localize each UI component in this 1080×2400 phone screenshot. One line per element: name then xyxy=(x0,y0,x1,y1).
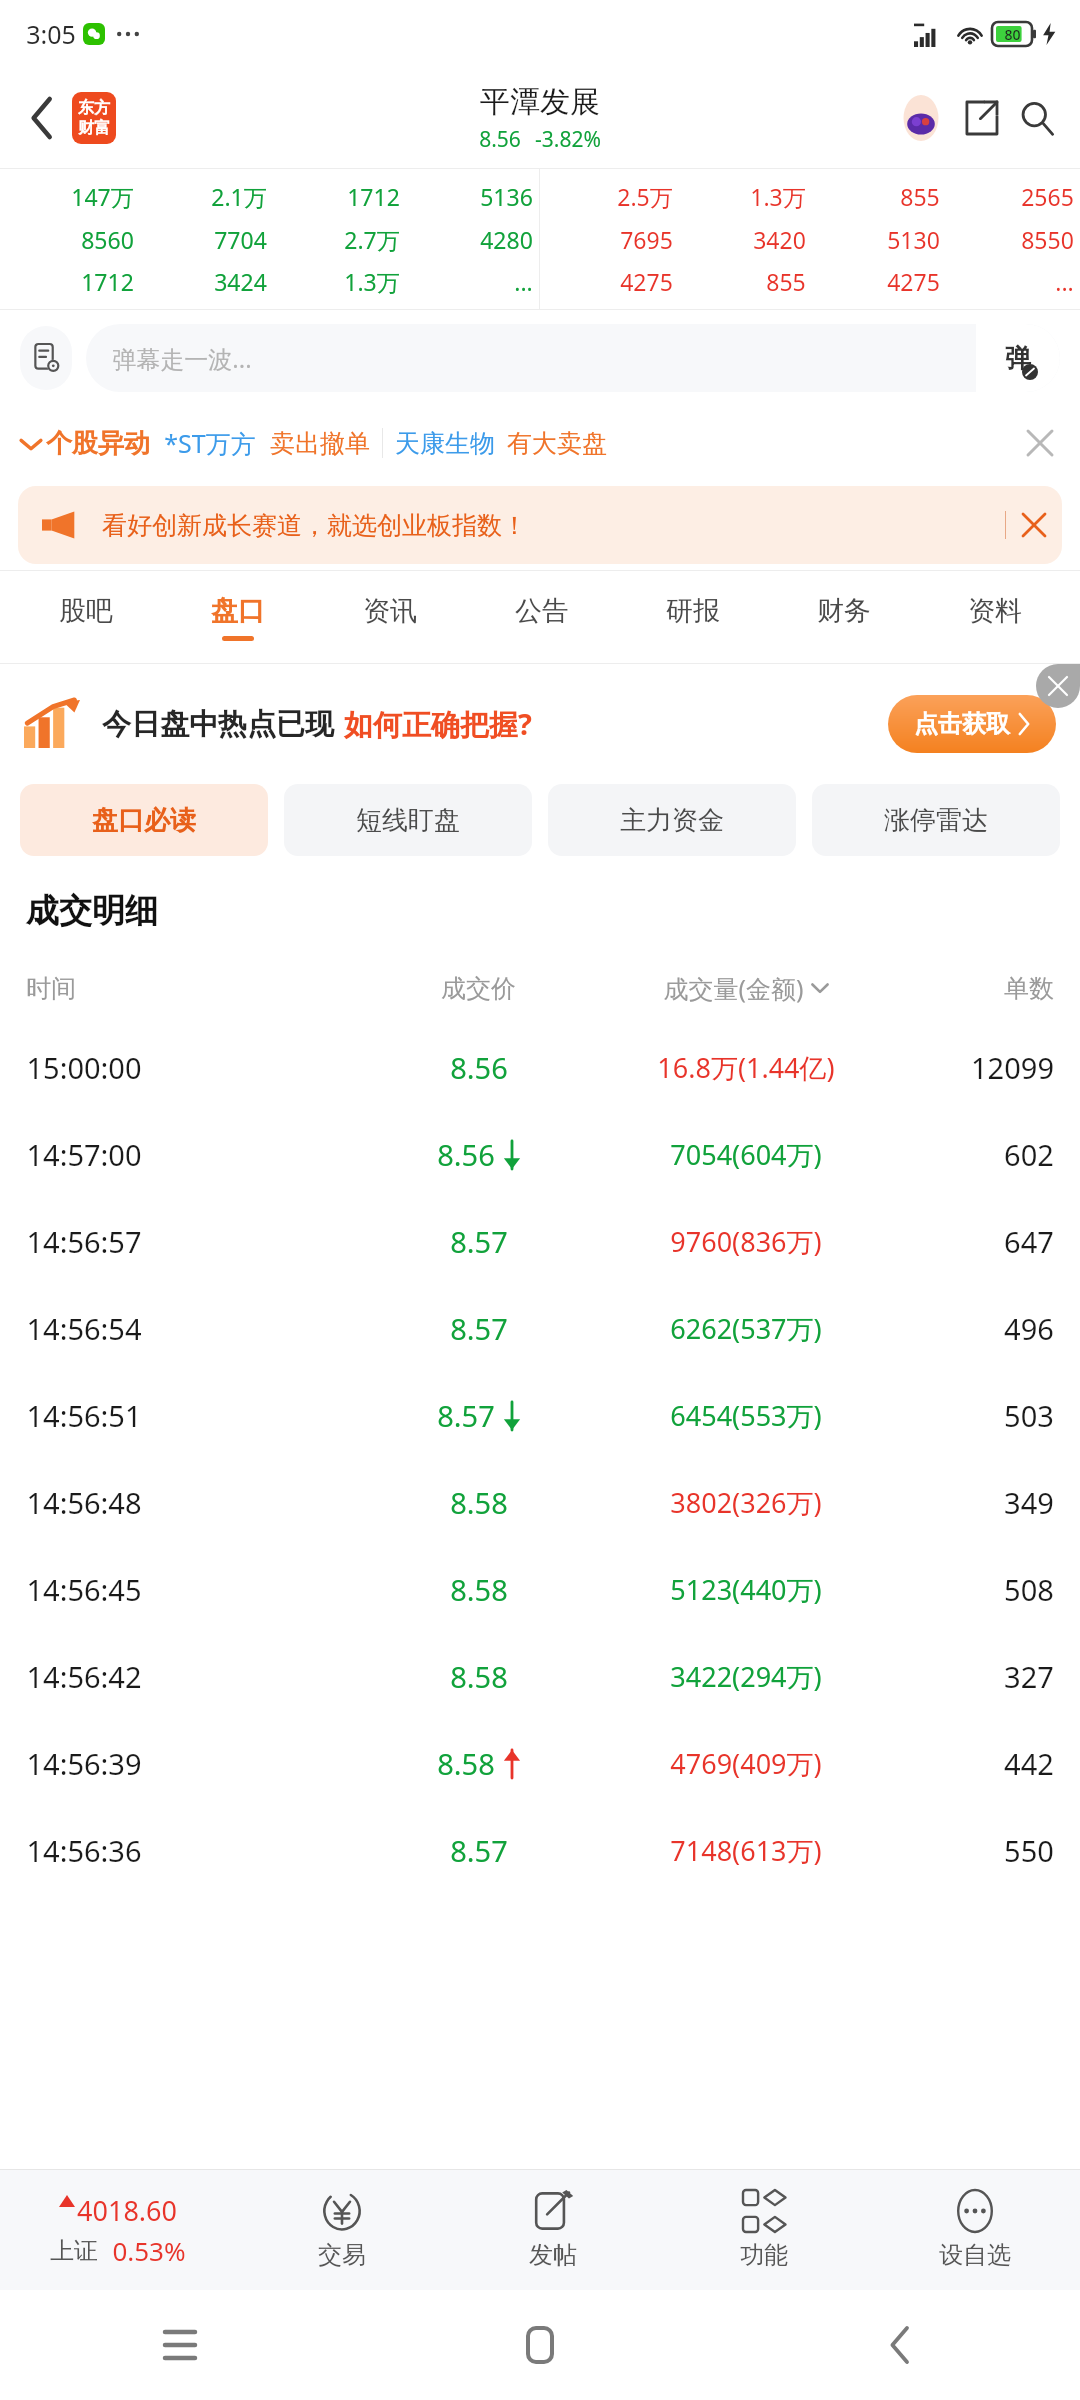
staticText: 财务 xyxy=(817,594,871,628)
button[interactable]: Share xyxy=(954,91,1008,145)
button[interactable]: 14:56:57 xyxy=(0,1198,1080,1285)
staticText: 14:56:36 xyxy=(26,1831,142,1870)
button[interactable]: 14:57:00 xyxy=(0,1111,1080,1198)
staticText: 成交价 xyxy=(441,973,516,1004)
staticText: 财富 xyxy=(78,118,110,138)
button[interactable]: 卖出撤单 xyxy=(270,428,370,459)
staticText: 研报 xyxy=(666,594,720,628)
button[interactable]: 14:56:48 xyxy=(0,1459,1080,1546)
staticText: 8.56 xyxy=(479,125,521,154)
button[interactable]: 发帖 xyxy=(447,2170,658,2290)
staticText: 弹 xyxy=(1005,342,1031,375)
staticText: 3420 xyxy=(753,224,806,255)
button[interactable]: Close ad xyxy=(1036,664,1080,708)
staticText: 14:56:39 xyxy=(26,1744,142,1783)
button[interactable]: 成交量(金额) xyxy=(602,971,890,1005)
staticText: 成交明细 xyxy=(26,890,158,932)
button[interactable]: Back xyxy=(14,90,70,146)
staticText: 4280 xyxy=(480,224,533,255)
button[interactable]: Toggle danmaku xyxy=(976,324,1060,392)
button[interactable]: Close banner xyxy=(1006,497,1062,553)
staticText: 5123(440万) xyxy=(670,1571,822,1608)
staticText: 7704 xyxy=(214,224,267,255)
button[interactable]: Home xyxy=(504,2309,576,2381)
button[interactable]: 看好创新成长赛道，就选创业板指数！ xyxy=(18,486,1062,564)
staticText: 855 xyxy=(766,266,806,297)
staticText: 资料 xyxy=(968,594,1022,628)
staticText: 4275 xyxy=(620,266,673,297)
button[interactable]: 弹幕走一波... xyxy=(86,324,1060,392)
button[interactable]: 功能 xyxy=(658,2170,869,2290)
staticText: 327 xyxy=(1004,1657,1054,1696)
staticText: 6262(537万) xyxy=(670,1310,822,1347)
staticText: 4769(409万) xyxy=(670,1745,822,1782)
staticText: 550 xyxy=(1004,1831,1054,1870)
button[interactable]: East Money xyxy=(72,92,116,144)
staticText: 功能 xyxy=(740,2240,788,2270)
button[interactable]: 有大卖盘 xyxy=(507,428,607,459)
button[interactable]: Back xyxy=(864,2309,936,2381)
staticText: 3424 xyxy=(214,266,267,297)
staticText: 14:56:42 xyxy=(26,1657,142,1696)
button[interactable]: 4018.60 xyxy=(0,2170,236,2290)
button[interactable]: Danmaku settings xyxy=(20,326,72,390)
button[interactable]: 14:56:54 xyxy=(0,1285,1080,1372)
button[interactable]: 资料 xyxy=(919,571,1070,663)
button[interactable]: 个股异动 xyxy=(18,427,150,460)
button[interactable]: Recents xyxy=(144,2309,216,2381)
button[interactable]: 公告 xyxy=(466,571,617,663)
staticText: 2.7万 xyxy=(344,224,400,255)
staticText: 2565 xyxy=(1021,181,1074,212)
staticText: 7148(613万) xyxy=(670,1832,822,1869)
button[interactable]: 14:56:45 xyxy=(0,1546,1080,1633)
staticText: 349 xyxy=(1004,1483,1054,1522)
staticText: ... xyxy=(1055,266,1074,297)
button[interactable]: 股吧 xyxy=(10,571,162,663)
staticText: 14:56:54 xyxy=(26,1309,142,1348)
button[interactable]: 研报 xyxy=(617,571,768,663)
button[interactable]: 设自选 xyxy=(869,2170,1080,2290)
staticText: 496 xyxy=(1004,1309,1054,1348)
staticText: 上证 xyxy=(50,2236,98,2266)
staticText: 4018.60 xyxy=(77,2192,177,2229)
staticText: 8550 xyxy=(1021,224,1074,255)
button[interactable]: 财务 xyxy=(768,571,919,663)
staticText: 短线盯盘 xyxy=(356,804,460,837)
staticText: 资讯 xyxy=(363,594,417,628)
button[interactable]: 14:56:51 xyxy=(0,1372,1080,1459)
staticText: 8.58 xyxy=(450,1570,508,1609)
button[interactable]: 14:56:36 xyxy=(0,1807,1080,1894)
staticText: 2.1万 xyxy=(211,181,267,212)
button[interactable]: 14:56:39 xyxy=(0,1720,1080,1807)
staticText: ... xyxy=(514,266,533,297)
button[interactable]: 资讯 xyxy=(314,571,466,663)
button[interactable]: 盘口必读 xyxy=(20,784,268,856)
staticText: 8.57 xyxy=(437,1396,495,1435)
button[interactable]: Search xyxy=(1010,91,1064,145)
button[interactable]: 短线盯盘 xyxy=(284,784,532,856)
button[interactable]: 盘口 xyxy=(162,571,314,663)
button[interactable]: 点击获取 xyxy=(888,695,1056,753)
staticText: 8.57 xyxy=(450,1831,508,1870)
staticText: 8.57 xyxy=(450,1309,508,1348)
button[interactable]: *ST万方 xyxy=(164,426,256,460)
staticText: 602 xyxy=(1004,1135,1054,1174)
staticText: 1712 xyxy=(81,266,134,297)
button[interactable]: 15:00:00 xyxy=(0,1024,1080,1111)
staticText: 东方 xyxy=(78,98,110,118)
staticText: 647 xyxy=(1004,1222,1054,1261)
button[interactable]: 天康生物 xyxy=(395,428,495,459)
staticText: 个股异动 xyxy=(46,427,150,460)
button[interactable]: 交易 xyxy=(236,2170,447,2290)
button[interactable]: 14:56:42 xyxy=(0,1633,1080,1720)
button[interactable]: Close xyxy=(1018,421,1062,465)
button[interactable]: 涨停雷达 xyxy=(812,784,1060,856)
staticText: 7054(604万) xyxy=(670,1136,822,1173)
button[interactable]: 主力资金 xyxy=(548,784,796,856)
staticText: 14:56:48 xyxy=(26,1483,142,1522)
staticText: 5130 xyxy=(887,224,940,255)
button[interactable]: 今日盘中热点已现 xyxy=(0,664,1080,784)
staticText: 盘口必读 xyxy=(92,804,196,837)
button[interactable]: AI assistant xyxy=(894,91,948,145)
staticText: 1.3万 xyxy=(344,266,400,297)
